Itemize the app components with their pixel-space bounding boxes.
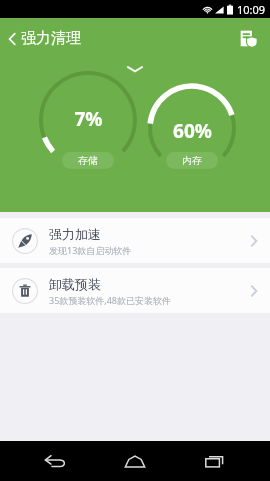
staticText: 发现13款自启动软件 [49, 244, 132, 256]
staticText: 内存 [182, 154, 202, 167]
button[interactable]: 存储 [62, 152, 114, 169]
staticText: 35款预装软件,48款已安装软件 [49, 294, 172, 306]
staticText: 60% [173, 118, 212, 142]
staticText: 7% [74, 106, 103, 130]
button[interactable]: 卸载预装 [0, 268, 270, 313]
staticText: 强力加速 [49, 226, 101, 242]
button[interactable]: 强力加速 [0, 218, 270, 263]
staticText: 存储 [78, 154, 98, 167]
button[interactable]: 强力清理 [0, 21, 89, 56]
button[interactable]: 展开 [117, 59, 153, 79]
button[interactable]: 内存 [166, 152, 218, 169]
button[interactable]: Recents [190, 441, 240, 481]
staticText: 10:09 [237, 2, 266, 17]
button[interactable]: Back [30, 441, 80, 481]
staticText: 卸载预装 [49, 276, 101, 292]
staticText: 强力清理 [21, 29, 81, 48]
button[interactable]: 文件安全 [234, 24, 262, 52]
button[interactable]: Home [110, 441, 160, 481]
